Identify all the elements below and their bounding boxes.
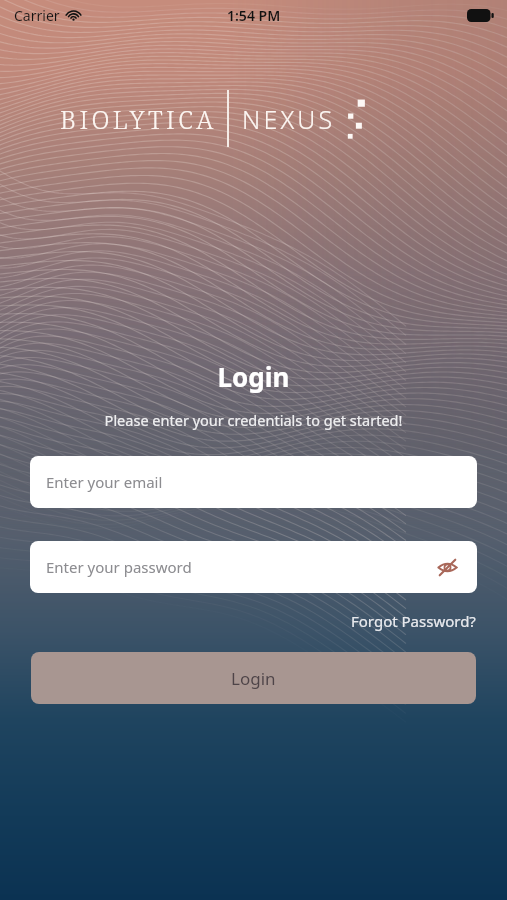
staticText: Enter your password: [46, 557, 192, 577]
button[interactable]: Login: [31, 652, 476, 704]
staticText: BIOLYTICA: [60, 102, 217, 136]
staticText: Login: [0, 359, 507, 394]
staticText: Please enter your credentials to get sta…: [0, 410, 507, 430]
button[interactable]: Show password: [430, 550, 464, 584]
button[interactable]: Forgot Password?: [349, 607, 478, 635]
staticText: Enter your email: [46, 472, 163, 492]
staticText: Forgot Password?: [351, 611, 476, 631]
button[interactable]: Enter your email: [30, 456, 477, 508]
staticText: 1:54 PM: [227, 6, 281, 25]
staticText: Login: [231, 667, 276, 690]
staticText: NEXUS: [242, 102, 336, 136]
button[interactable]: Enter your password: [30, 541, 477, 593]
staticText: Carrier: [14, 6, 60, 25]
